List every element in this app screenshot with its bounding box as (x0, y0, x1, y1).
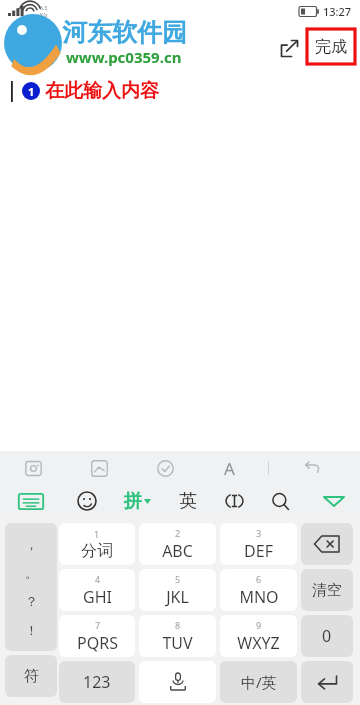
button[interactable]: Share (272, 31, 306, 65)
button[interactable]: Enter (301, 661, 353, 703)
button[interactable]: 符 (5, 655, 57, 697)
button[interactable]: 0 (301, 615, 353, 657)
button[interactable]: Emoji (72, 486, 102, 516)
button[interactable]: Hide keyboard (316, 484, 352, 518)
staticText: 。 (25, 565, 38, 581)
button[interactable]: 2 (139, 523, 216, 565)
button[interactable]: Punctuation (5, 523, 57, 651)
staticText: JKL (166, 586, 189, 608)
button[interactable]: 3 (220, 523, 297, 565)
staticText: 完成 (315, 37, 347, 57)
button[interactable]: 123 (59, 661, 135, 703)
button[interactable]: 8 (139, 615, 216, 657)
button[interactable]: Check (150, 453, 180, 483)
staticText: 符 (24, 667, 39, 686)
staticText: 中/英 (241, 672, 277, 692)
staticText: 2 (175, 527, 181, 539)
staticText: 分词 (81, 541, 113, 561)
staticText: A (224, 457, 235, 480)
staticText: 在此输入内容 (45, 79, 159, 103)
button[interactable]: 完成 (307, 29, 355, 64)
button[interactable]: Search (265, 486, 295, 516)
staticText: 13:27 (323, 4, 352, 19)
staticText: MNO (239, 586, 279, 608)
staticText: 7 (95, 619, 101, 631)
button[interactable]: 7 (59, 615, 135, 657)
button[interactable]: 6 (220, 569, 297, 611)
staticText: ABC (162, 540, 193, 562)
staticText: PQRS (77, 632, 118, 654)
staticText: 9 (256, 619, 262, 631)
staticText: 河东软件园 (62, 17, 187, 48)
staticText: 6 (256, 573, 262, 585)
staticText: 英 (179, 490, 197, 513)
button[interactable]: 清空 (301, 569, 353, 611)
button[interactable]: 5 (139, 569, 216, 611)
button[interactable]: 4 (59, 569, 135, 611)
staticText: 123 (83, 671, 111, 693)
button[interactable]: Cursor (219, 486, 249, 516)
button[interactable]: Space (139, 661, 216, 703)
button[interactable]: Camera (18, 453, 48, 483)
button[interactable]: 中/英 (220, 661, 297, 703)
staticText: ！ (25, 622, 38, 638)
staticText: GHI (83, 586, 112, 608)
staticText: 0 (322, 625, 332, 647)
staticText: 6.3 K/s (40, 5, 48, 18)
staticText: 8 (175, 619, 181, 631)
staticText: 4 (95, 573, 101, 585)
staticText: 1 (28, 84, 35, 99)
staticText: 5 (175, 573, 181, 585)
staticText: ， (25, 536, 38, 552)
staticText: 3 (256, 527, 262, 539)
button[interactable]: Undo (297, 453, 327, 483)
staticText: 1 (94, 528, 100, 540)
button[interactable]: 1 (59, 523, 135, 565)
button[interactable]: Font (214, 453, 244, 483)
staticText: www.pc0359.cn (66, 47, 182, 67)
staticText: 拼 (124, 490, 142, 513)
staticText: TUV (162, 632, 193, 654)
staticText: DEF (244, 540, 273, 562)
button[interactable]: 9 (220, 615, 297, 657)
button[interactable]: Gallery (84, 453, 114, 483)
staticText: 清空 (312, 581, 342, 600)
button[interactable]: Delete (301, 523, 353, 565)
button[interactable]: 拼 (124, 490, 151, 513)
button[interactable]: 英 (173, 486, 203, 516)
staticText: WXYZ (237, 632, 280, 654)
button[interactable]: Keyboard (14, 488, 48, 514)
staticText: ？ (25, 593, 38, 609)
